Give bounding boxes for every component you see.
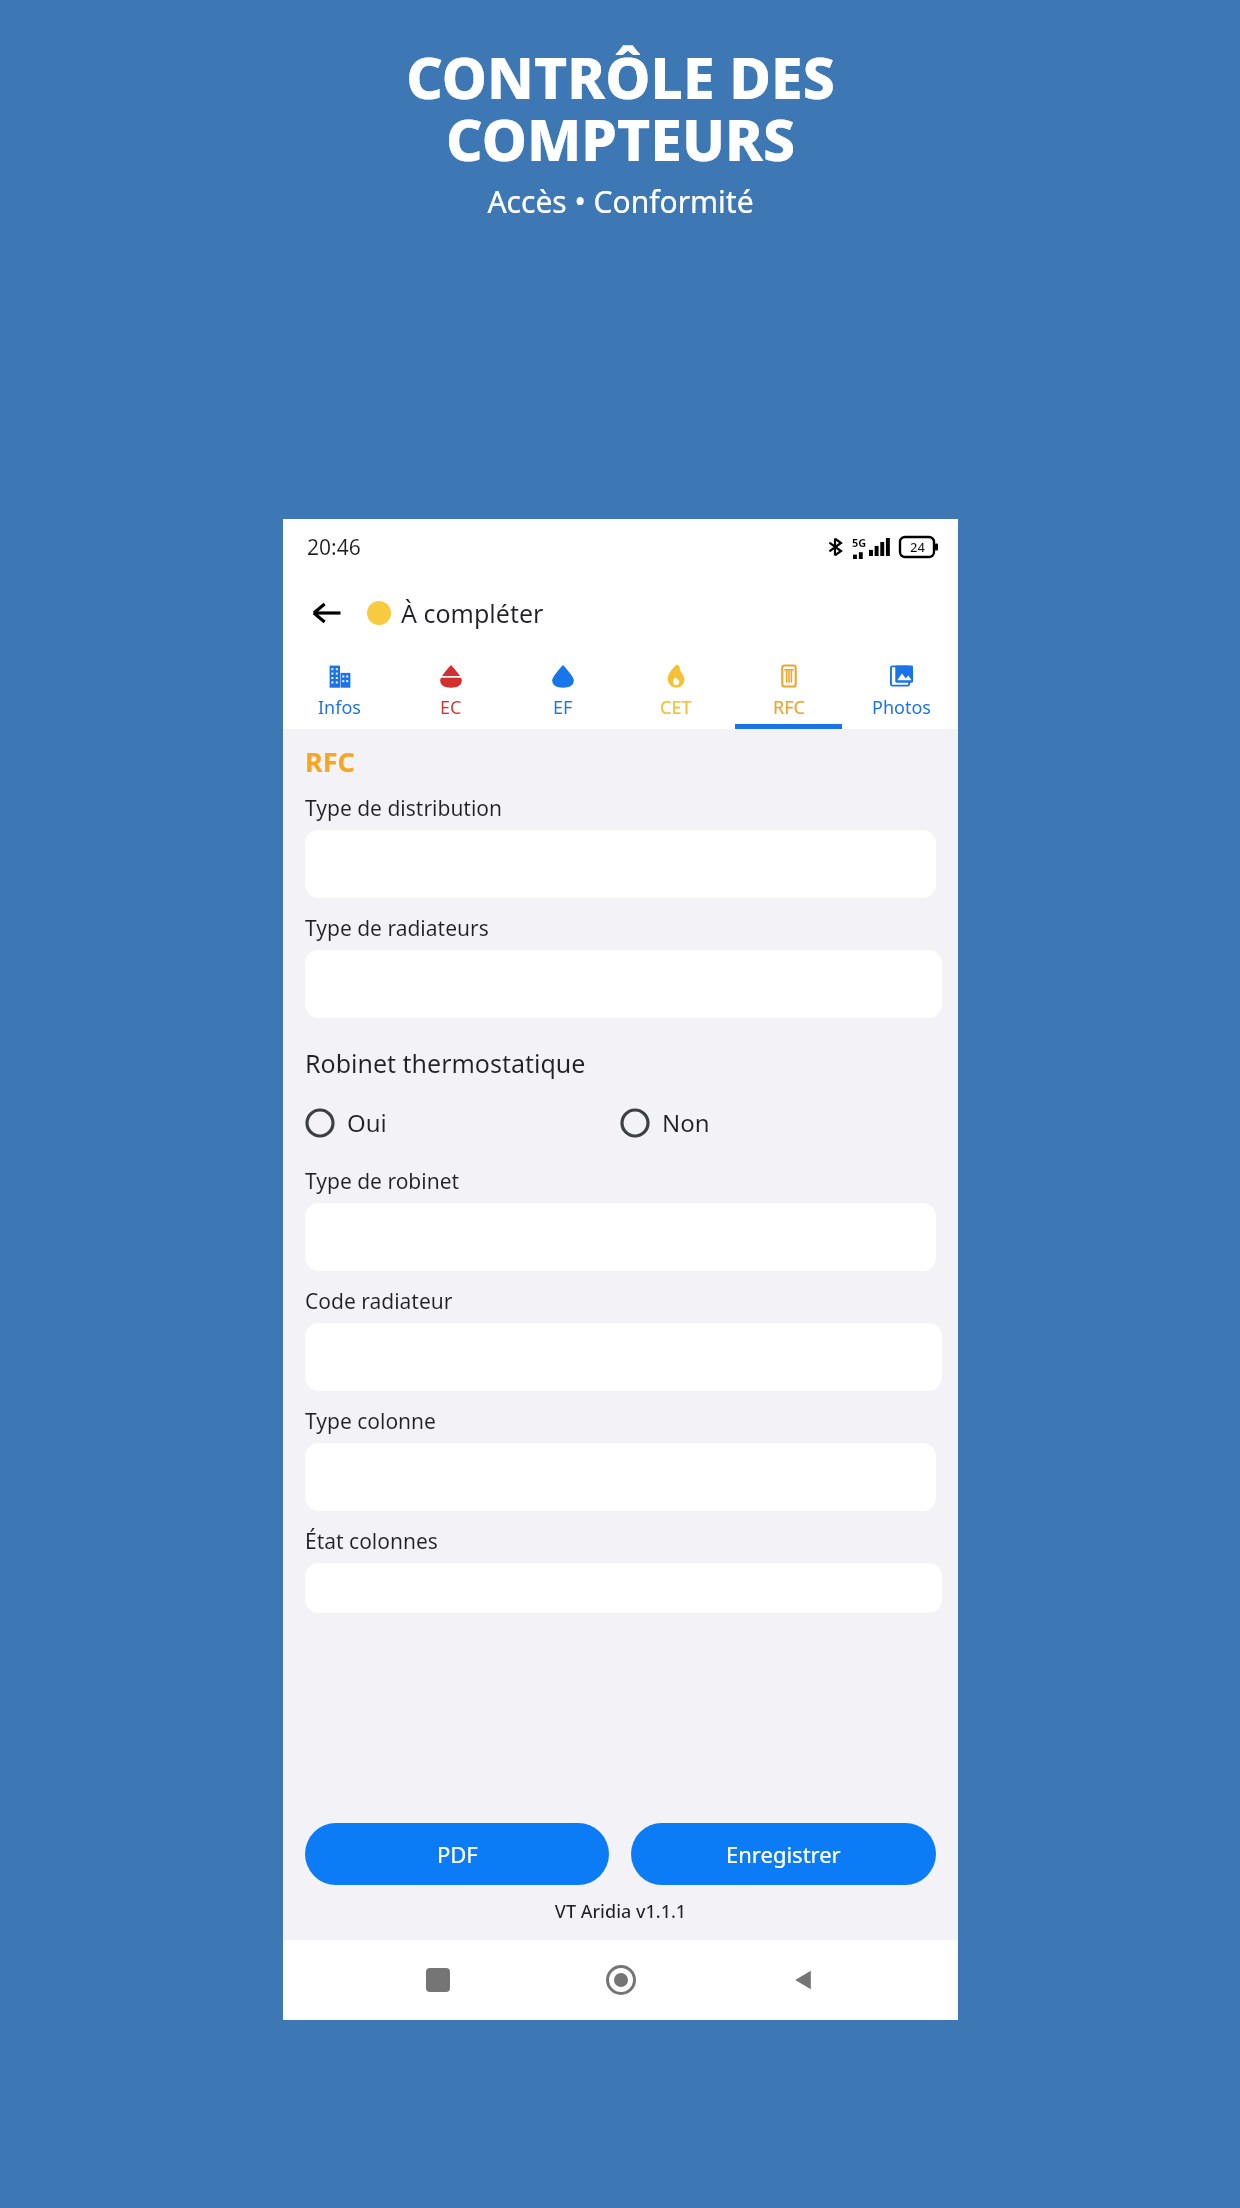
button[interactable]: EC [395, 651, 507, 729]
button[interactable]: Retour [301, 587, 353, 639]
staticText: CET [660, 695, 692, 720]
staticText: Type de radiateurs [305, 914, 489, 943]
staticText: VT Aridia v1.1.1 [283, 1899, 958, 1924]
staticText: CONTRÔLE DES COMPTEURS [406, 38, 835, 177]
staticText: Type de robinet [305, 1167, 460, 1196]
staticText: EF [553, 695, 573, 720]
button[interactable]: Photos [845, 651, 958, 729]
staticText: Robinet thermostatique [305, 1046, 586, 1080]
staticText: 24 [910, 538, 925, 556]
staticText: Accès • Conformité [487, 181, 754, 222]
button[interactable]: Accueil [593, 1952, 649, 2008]
staticText: EC [440, 695, 462, 720]
button[interactable]: Oui [305, 1106, 620, 1139]
staticText: Non [662, 1106, 710, 1139]
button[interactable]: Non [620, 1106, 936, 1139]
button[interactable]: RFC [732, 651, 845, 729]
staticText: Photos [872, 695, 931, 720]
staticText: 5G [852, 535, 867, 550]
staticText: 20:46 [307, 533, 361, 562]
staticText: RFC [773, 695, 805, 720]
button[interactable]: EF [507, 651, 619, 729]
staticText: RFC [305, 743, 355, 780]
staticText: Oui [347, 1106, 387, 1139]
staticText: À compléter [401, 596, 544, 630]
button[interactable]: Enregistrer [631, 1823, 936, 1885]
button[interactable]: CET [619, 651, 732, 729]
button[interactable]: Retour [775, 1952, 831, 2008]
staticText: État colonnes [305, 1527, 438, 1556]
button[interactable]: Infos [283, 651, 395, 729]
staticText: Infos [318, 695, 361, 720]
staticText: Type colonne [305, 1407, 436, 1436]
staticText: Code radiateur [305, 1287, 453, 1316]
staticText: Type de distribution [305, 794, 503, 823]
button[interactable]: PDF [305, 1823, 609, 1885]
staticText: Enregistrer [726, 1839, 841, 1869]
staticText: PDF [437, 1839, 478, 1869]
button[interactable]: Récents [410, 1952, 466, 2008]
